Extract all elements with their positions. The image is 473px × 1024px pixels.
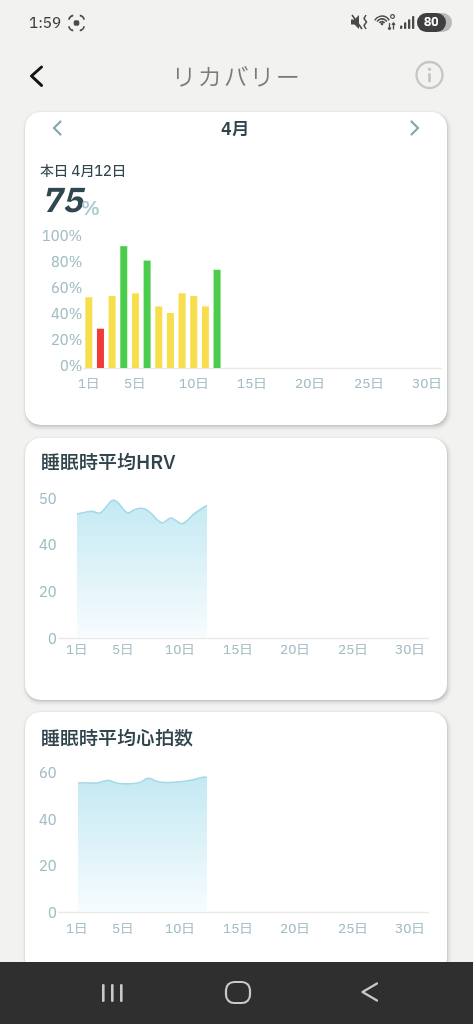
staticText: 30日 xyxy=(395,640,425,658)
staticText: 5日 xyxy=(124,374,146,392)
button[interactable] xyxy=(208,968,268,1018)
staticText: 睡眠時平均HRV xyxy=(41,449,176,472)
staticText: 0 xyxy=(48,903,57,923)
button[interactable] xyxy=(340,968,400,1018)
staticText: 30日 xyxy=(395,919,425,937)
staticText: 40 xyxy=(39,535,57,555)
staticText: 15日 xyxy=(223,640,253,658)
staticText: 10日 xyxy=(179,374,209,392)
button[interactable] xyxy=(412,58,448,94)
button[interactable] xyxy=(82,968,142,1018)
staticText: 1日 xyxy=(78,374,100,392)
staticText: 20% xyxy=(51,330,83,350)
staticText: 5日 xyxy=(112,919,134,937)
staticText: % xyxy=(81,195,100,219)
staticText: 1日 xyxy=(66,640,88,658)
staticText: 30日 xyxy=(412,374,442,392)
staticText: 睡眠時平均心拍数 xyxy=(41,725,194,748)
staticText: 80% xyxy=(51,252,83,272)
staticText: 60% xyxy=(51,278,83,298)
staticText: 0 xyxy=(48,629,57,649)
staticText: 25日 xyxy=(338,919,368,937)
staticText: 10日 xyxy=(165,919,195,937)
staticText: 20 xyxy=(39,856,57,876)
staticText: 100% xyxy=(42,226,83,246)
button[interactable] xyxy=(42,113,72,143)
staticText: 20日 xyxy=(280,640,310,658)
staticText: 1日 xyxy=(66,919,88,937)
button[interactable] xyxy=(16,58,52,94)
staticText: 40% xyxy=(51,304,83,324)
staticText: 5日 xyxy=(112,640,134,658)
staticText: 15日 xyxy=(223,919,253,937)
staticText: 1:59 xyxy=(29,13,62,31)
staticText: 80 xyxy=(424,14,439,31)
staticText: 50 xyxy=(39,489,57,509)
staticText: リカバリー xyxy=(172,61,302,91)
staticText: 20日 xyxy=(295,374,325,392)
staticText: 10日 xyxy=(165,640,195,658)
staticText: 40 xyxy=(39,810,57,830)
staticText: 20日 xyxy=(280,919,310,937)
staticText: 15日 xyxy=(237,374,267,392)
staticText: 20 xyxy=(39,582,57,602)
staticText: 4月 xyxy=(221,117,249,139)
staticText: 0% xyxy=(60,356,83,376)
staticText: 60 xyxy=(39,763,57,783)
staticText: 25日 xyxy=(354,374,384,392)
staticText: 25日 xyxy=(338,640,368,658)
staticText: 本日 4月12日 xyxy=(40,161,126,181)
button[interactable] xyxy=(400,113,430,143)
